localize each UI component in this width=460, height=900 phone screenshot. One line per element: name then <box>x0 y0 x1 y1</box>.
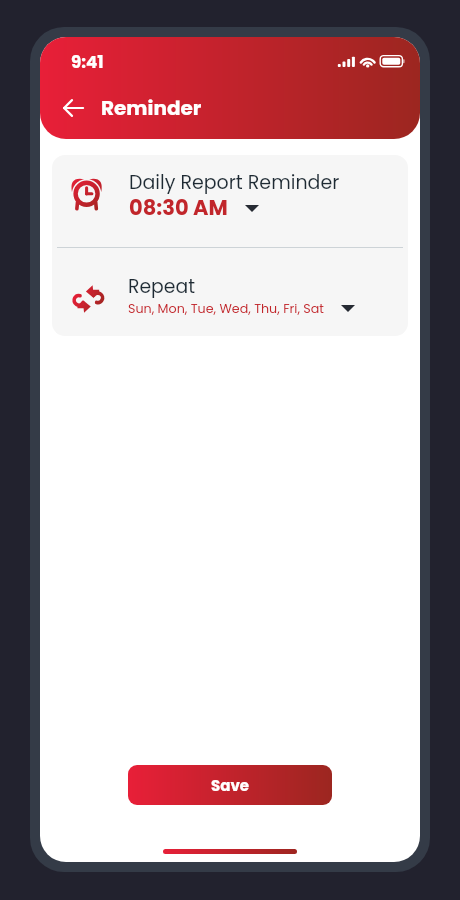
staticText: Sun, Mon, Tue, Wed, Thu, Fri, Sat <box>128 300 324 318</box>
staticText: Daily Report Reminder <box>129 169 340 196</box>
staticText: 9:41 <box>71 50 104 73</box>
button[interactable]: Daily Report Reminder <box>52 155 408 246</box>
staticText: Save <box>211 775 250 796</box>
staticText: Repeat <box>128 273 195 299</box>
staticText: Reminder <box>101 94 202 122</box>
button[interactable]: Save <box>128 765 332 805</box>
button[interactable]: Repeat <box>52 246 408 336</box>
staticText: 08:30 AM <box>129 193 228 222</box>
button[interactable]: Back <box>55 90 91 126</box>
